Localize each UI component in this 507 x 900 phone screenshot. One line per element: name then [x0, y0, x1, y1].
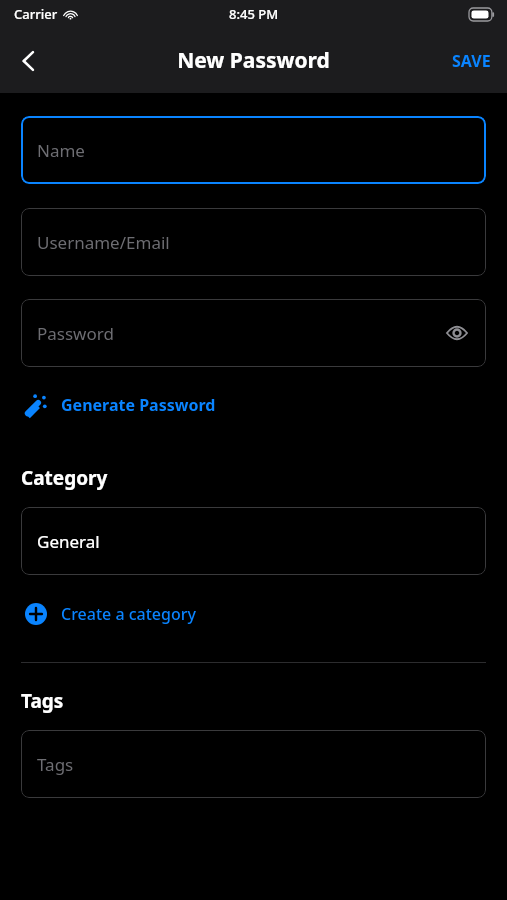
staticText: Username/Email [37, 231, 170, 254]
staticText: SAVE [452, 50, 491, 72]
staticText: Tags [37, 753, 74, 776]
button[interactable]: Back [6, 38, 52, 84]
button[interactable]: Tags [21, 730, 486, 798]
button[interactable]: Username/Email [21, 208, 486, 276]
button[interactable]: Password [21, 299, 486, 367]
staticText: Generate Password [61, 394, 216, 416]
staticText: General [37, 530, 100, 553]
button[interactable]: SAVE [446, 42, 497, 80]
button[interactable]: Create a category [21, 597, 200, 631]
staticText: Password [37, 322, 114, 345]
staticText: Carrier [14, 5, 58, 23]
button[interactable]: Name [21, 116, 486, 184]
staticText: Tags [21, 688, 64, 714]
staticText: 8:45 PM [229, 5, 279, 23]
staticText: Category [21, 465, 108, 491]
button[interactable]: Generate Password [21, 388, 220, 422]
staticText: Name [37, 139, 85, 162]
staticText: Create a category [61, 603, 196, 625]
button[interactable]: Show password [442, 318, 472, 348]
staticText: New Password [177, 46, 330, 75]
button[interactable]: General [21, 507, 486, 575]
